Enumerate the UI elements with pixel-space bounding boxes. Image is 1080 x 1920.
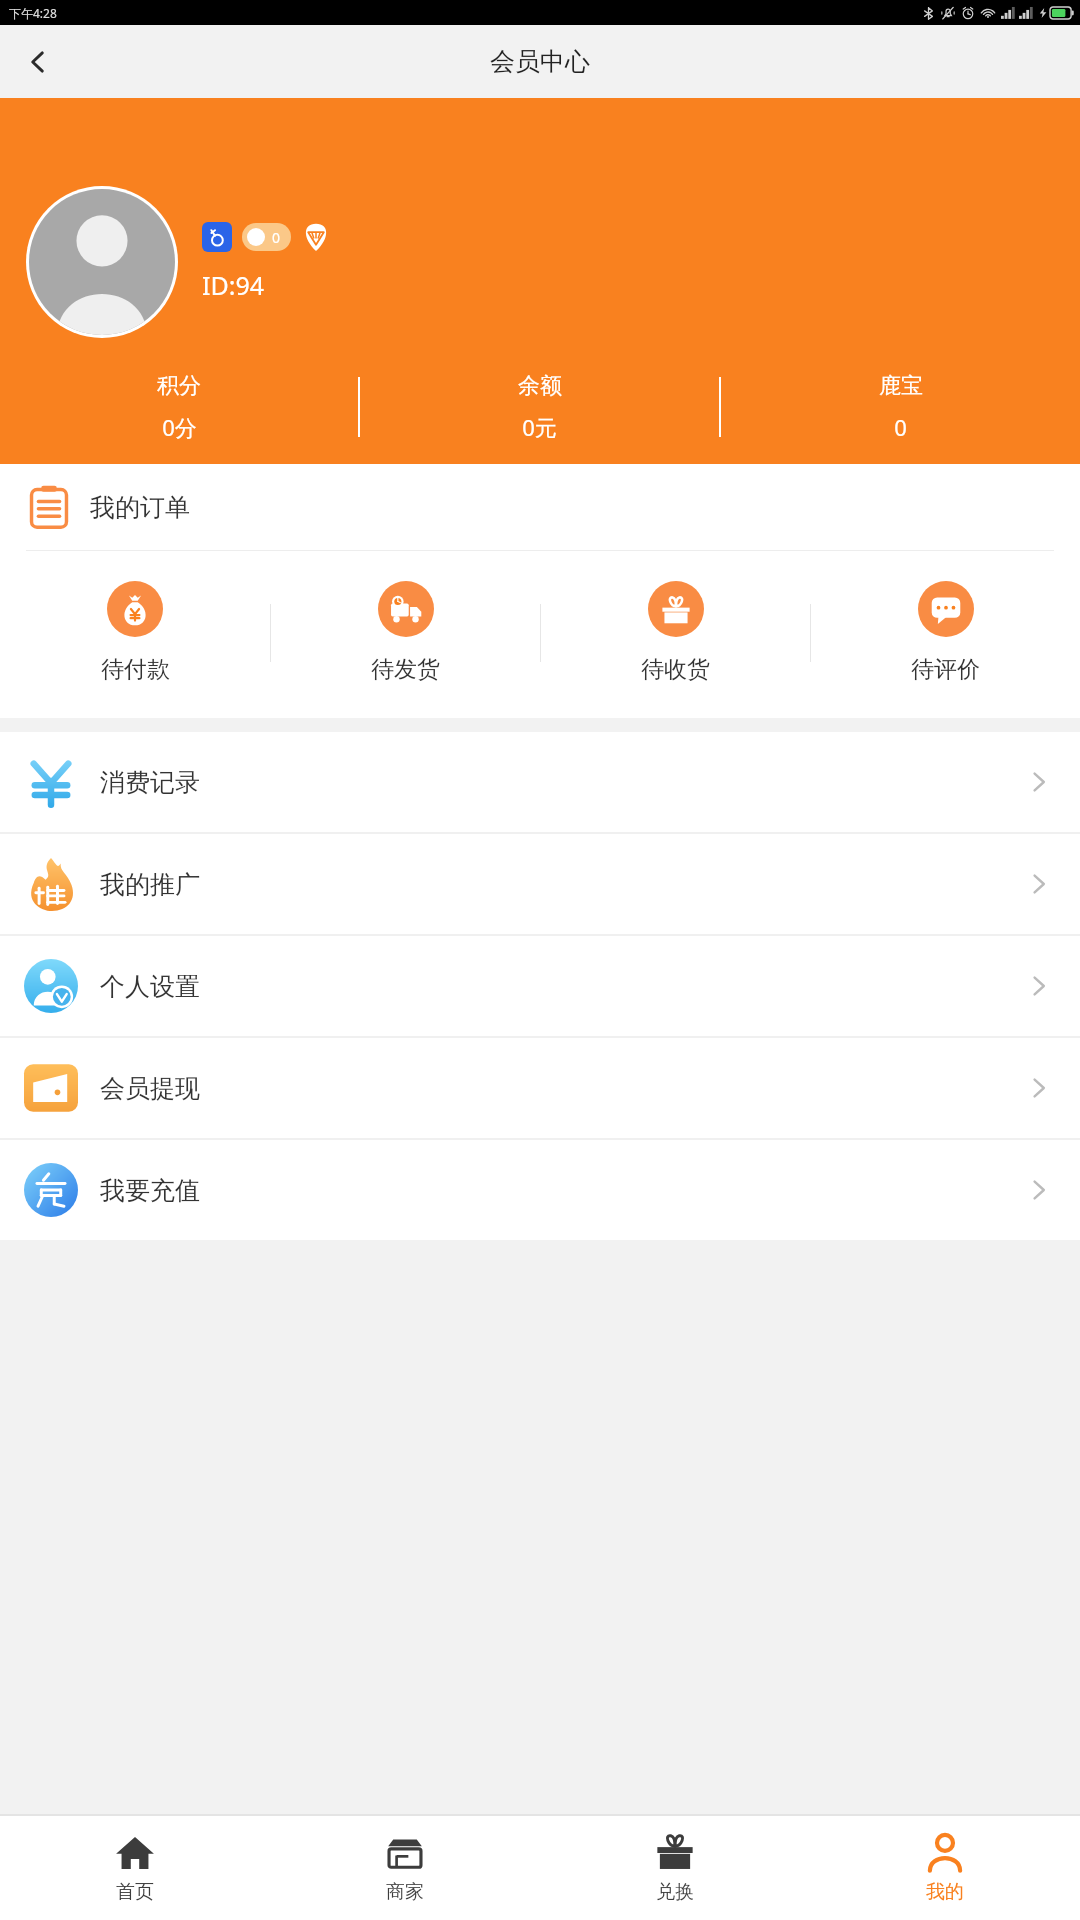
button[interactable]: 个人设置 <box>0 936 1080 1036</box>
staticText: 我要充值 <box>100 1175 200 1206</box>
button[interactable]: 待发货 <box>271 581 540 684</box>
staticText: 会员中心 <box>490 46 590 77</box>
staticText: 消费记录 <box>100 767 200 798</box>
button[interactable]: 待收货 <box>541 581 810 684</box>
button[interactable]: Back <box>10 34 66 90</box>
staticText: 待评价 <box>911 655 980 684</box>
button[interactable]: 待评价 <box>811 581 1080 684</box>
button[interactable]: 待付款 <box>0 581 270 684</box>
button[interactable]: 鹿宝 <box>721 372 1080 442</box>
staticText: 待发货 <box>371 655 440 684</box>
button[interactable]: 积分 <box>0 372 358 442</box>
staticText: 首页 <box>116 1880 154 1904</box>
staticText: 兑换 <box>656 1880 694 1904</box>
button[interactable]: 商家 <box>270 1816 540 1920</box>
staticText: 0 <box>272 228 281 247</box>
button[interactable]: 我的订单 <box>0 464 1080 550</box>
staticText: 会员提现 <box>100 1073 200 1104</box>
button[interactable]: 我的 <box>810 1816 1080 1920</box>
button[interactable]: 消费记录 <box>0 732 1080 832</box>
staticText: 我的 <box>926 1880 964 1904</box>
staticText: ID:94 <box>202 268 265 302</box>
button[interactable]: 兑换 <box>540 1816 810 1920</box>
staticText: 积分 <box>157 372 201 400</box>
button[interactable]: 会员提现 <box>0 1038 1080 1138</box>
staticText: 0分 <box>162 412 197 442</box>
button[interactable]: 余额 <box>360 372 719 442</box>
staticText: 商家 <box>386 1880 424 1904</box>
staticText: 个人设置 <box>100 971 200 1002</box>
staticText: 余额 <box>518 372 562 400</box>
button[interactable]: 我要充值 <box>0 1140 1080 1240</box>
staticText: 鹿宝 <box>879 372 923 400</box>
button[interactable]: Avatar <box>29 189 175 335</box>
button[interactable]: 我的推广 <box>0 834 1080 934</box>
button[interactable]: 首页 <box>0 1816 270 1920</box>
staticText: 我的订单 <box>90 492 190 523</box>
staticText: 0 <box>894 412 907 442</box>
staticText: 待付款 <box>101 655 170 684</box>
staticText: 0元 <box>522 412 557 442</box>
staticText: 下午4:28 <box>9 5 57 21</box>
staticText: 待收货 <box>641 655 710 684</box>
staticText: 我的推广 <box>100 869 200 900</box>
